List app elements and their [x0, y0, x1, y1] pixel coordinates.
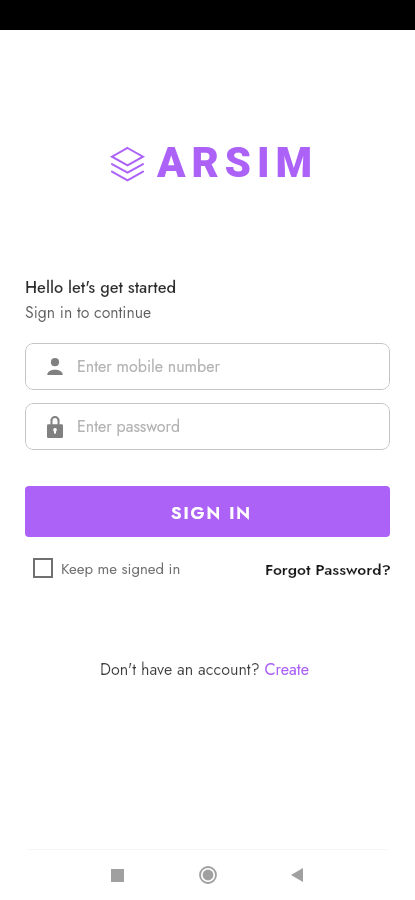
staticText: Enter password: [77, 415, 181, 438]
staticText: Enter mobile number: [77, 355, 220, 378]
button[interactable]: Home: [172, 852, 244, 898]
staticText: SIGN IN: [171, 500, 253, 525]
staticText: Sign in to continue: [25, 301, 152, 324]
button[interactable]: Don't have an account? Create: [100, 658, 310, 681]
button[interactable]: Forgot Password?: [265, 558, 392, 581]
button[interactable]: Enter mobile number: [25, 343, 390, 390]
staticText: ARSIM: [157, 138, 319, 187]
button[interactable]: SIGN IN: [25, 486, 390, 537]
button[interactable]: Enter password: [25, 403, 390, 450]
button[interactable]: Keep me signed in: [25, 557, 181, 579]
button[interactable]: Recent apps: [81, 852, 153, 898]
staticText: Keep me signed in: [61, 558, 181, 580]
button[interactable]: Back: [261, 852, 333, 898]
staticText: Hello let's get started: [25, 276, 177, 300]
